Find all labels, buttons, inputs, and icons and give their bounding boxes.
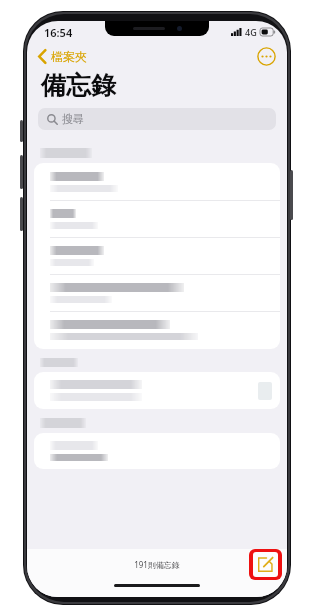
button[interactable]: 搜尋 bbox=[38, 108, 276, 130]
button[interactable] bbox=[34, 238, 280, 274]
button[interactable]: 檔案夾 bbox=[38, 49, 87, 64]
staticText: 191則備忘錄 bbox=[134, 559, 180, 570]
button[interactable] bbox=[34, 433, 280, 469]
staticText: 4G bbox=[245, 26, 257, 38]
staticText: 搜尋 bbox=[62, 112, 84, 126]
button[interactable]: More options bbox=[257, 47, 276, 66]
button[interactable] bbox=[34, 312, 280, 349]
button[interactable] bbox=[34, 275, 280, 311]
staticText: 備忘錄 bbox=[41, 70, 116, 101]
button[interactable] bbox=[34, 372, 280, 409]
button[interactable]: New note bbox=[253, 552, 278, 577]
button[interactable] bbox=[34, 163, 280, 200]
button[interactable] bbox=[34, 201, 280, 237]
staticText: 16:54 bbox=[44, 25, 73, 40]
staticText: 檔案夾 bbox=[51, 49, 87, 64]
